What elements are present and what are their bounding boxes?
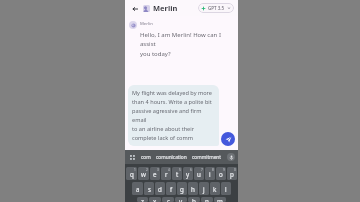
staticText: s <box>148 185 151 193</box>
button[interactable]: u <box>194 167 204 180</box>
button[interactable]: h <box>188 182 198 195</box>
staticText: j <box>203 185 205 193</box>
button[interactable]: y <box>183 167 193 180</box>
staticText: 0 <box>234 168 236 172</box>
staticText: v <box>179 197 183 202</box>
staticText: My flight was delayed by more than 4 hou… <box>132 89 215 142</box>
button[interactable]: v <box>175 197 187 202</box>
button[interactable]: j <box>199 182 209 195</box>
button[interactable]: q <box>126 167 137 180</box>
button[interactable]: n <box>201 197 213 202</box>
button[interactable]: m <box>214 197 226 202</box>
staticText: e <box>153 170 157 178</box>
staticText: 3 <box>157 168 159 172</box>
staticText: r <box>165 170 168 178</box>
button[interactable]: Keyboard options <box>128 153 136 161</box>
staticText: n <box>205 197 209 202</box>
staticText: Hello, I am Merlin! How can I assist you… <box>140 31 232 58</box>
button[interactable]: x <box>149 197 161 202</box>
button[interactable]: t <box>172 167 182 180</box>
button[interactable]: r <box>161 167 171 180</box>
staticText: commitment <box>192 154 222 161</box>
button[interactable]: f <box>166 182 176 195</box>
staticText: Merlin <box>153 3 178 13</box>
staticText: z <box>141 197 144 202</box>
button[interactable]: a <box>132 182 143 195</box>
staticText: 4 <box>168 168 170 172</box>
button[interactable]: Back <box>129 3 140 14</box>
button[interactable]: d <box>155 182 165 195</box>
staticText: c <box>167 197 170 202</box>
staticText: 1 <box>134 168 136 172</box>
button[interactable]: w <box>138 167 149 180</box>
staticText: f <box>170 185 173 193</box>
staticText: d <box>158 185 162 193</box>
button[interactable]: Voice input <box>227 153 235 161</box>
staticText: 9 <box>223 168 225 172</box>
staticText: comunication <box>156 154 187 161</box>
staticText: k <box>213 185 217 193</box>
button[interactable]: p <box>227 167 237 180</box>
button[interactable]: g <box>177 182 187 195</box>
staticText: 8 <box>212 168 214 172</box>
staticText: l <box>225 185 227 193</box>
button[interactable]: z <box>137 197 148 202</box>
button[interactable]: s <box>144 182 154 195</box>
staticText: q <box>130 170 134 178</box>
button[interactable]: l <box>221 182 231 195</box>
staticText: t <box>176 170 179 178</box>
staticText: i <box>209 170 211 178</box>
button[interactable]: i <box>205 167 215 180</box>
staticText: 6 <box>190 168 192 172</box>
staticText: w <box>141 170 146 178</box>
staticText: x <box>153 197 157 202</box>
staticText: 5 <box>179 168 181 172</box>
staticText: g <box>180 185 184 193</box>
staticText: a <box>136 185 140 193</box>
staticText: 2 <box>146 168 148 172</box>
staticText: Merlin <box>140 21 153 27</box>
button[interactable]: GPT 3.5 <box>198 3 234 13</box>
staticText: o <box>219 170 223 178</box>
staticText: com <box>141 154 151 161</box>
button[interactable]: o <box>216 167 226 180</box>
staticText: u <box>197 170 201 178</box>
button[interactable]: b <box>188 197 200 202</box>
button[interactable]: Send <box>221 132 235 146</box>
staticText: m <box>217 197 223 202</box>
staticText: GPT 3.5 <box>208 5 225 11</box>
staticText: h <box>191 185 195 193</box>
button[interactable]: e <box>150 167 160 180</box>
button[interactable]: c <box>162 197 174 202</box>
button[interactable]: k <box>210 182 220 195</box>
staticText: 7 <box>201 168 203 172</box>
button[interactable]: My flight was delayed by more than 4 hou… <box>128 85 219 146</box>
staticText: b <box>192 197 196 202</box>
staticText: y <box>186 170 190 178</box>
staticText: p <box>230 170 234 178</box>
